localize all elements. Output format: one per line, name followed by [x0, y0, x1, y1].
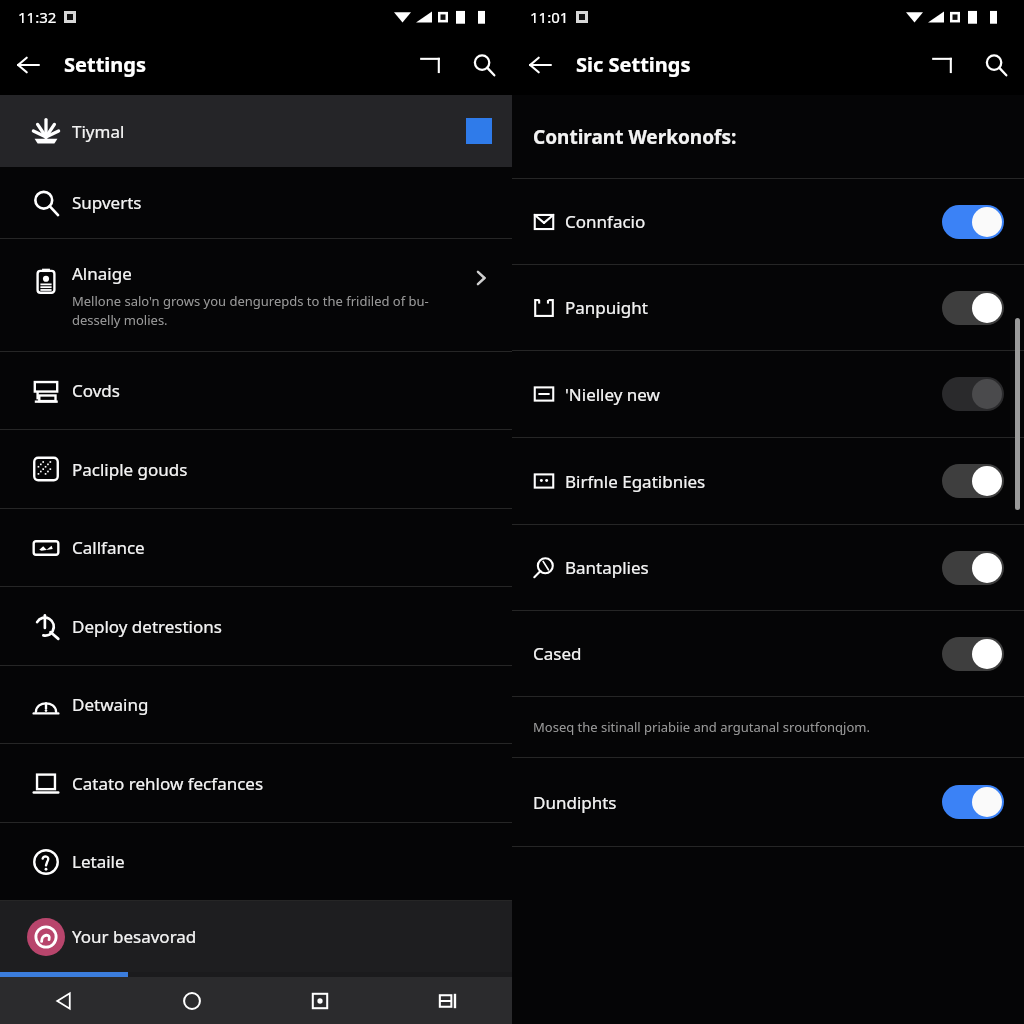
button[interactable]: Back [0, 977, 128, 1024]
staticText: Sic Settings [576, 51, 691, 78]
button[interactable]: Letaile [0, 823, 512, 900]
button[interactable]: Tiymal [0, 95, 512, 167]
button[interactable]: Bantaplies [512, 525, 1024, 610]
button[interactable]: Toggle [942, 551, 1004, 585]
staticText: Dundiphts [533, 791, 942, 814]
button[interactable]: Toggle [942, 291, 1004, 325]
button[interactable]: Connfacio [512, 179, 1024, 264]
button[interactable]: Covds [0, 352, 512, 429]
button[interactable]: Back [0, 37, 56, 93]
button[interactable]: Alnaige [0, 239, 512, 351]
staticText: Panpuight [565, 296, 942, 319]
staticText: Catato rehlow fecfances [72, 772, 264, 795]
staticText: Your besavorad [72, 925, 197, 948]
button[interactable]: Toggle [942, 637, 1004, 671]
button[interactable]: Toggle [942, 205, 1004, 239]
button[interactable]: Catato rehlow fecfances [0, 744, 512, 822]
staticText: Bantaplies [565, 556, 942, 579]
staticText: Birfnle Egatibnies [565, 470, 942, 493]
button[interactable]: Cased [512, 611, 1024, 696]
button[interactable]: Search [456, 37, 512, 93]
button[interactable]: Deploy detrestions [0, 587, 512, 665]
staticText: Deploy detrestions [72, 615, 222, 638]
button[interactable]: 'Nielley new [512, 351, 1024, 437]
staticText: Moseq the sitinall priabiie and argutana… [533, 718, 870, 736]
staticText: Pacliple gouds [72, 458, 188, 481]
staticText: Callfance [72, 536, 145, 559]
button[interactable]: Search [968, 37, 1024, 93]
button[interactable]: Cast [916, 39, 968, 91]
button[interactable]: Toggle [942, 464, 1004, 498]
button[interactable]: Back [512, 37, 568, 93]
staticText: Alnaige [72, 262, 132, 285]
staticText: 11:32 [18, 7, 57, 27]
button[interactable]: Toggle [942, 377, 1004, 411]
staticText: Mellone salo'n grows you dengurepds to t… [72, 292, 462, 329]
button[interactable]: Recents [384, 977, 512, 1024]
staticText: 'Nielley new [565, 383, 942, 406]
button[interactable]: Detwaing [0, 666, 512, 743]
button[interactable]: Toggle [942, 785, 1004, 819]
staticText: Covds [72, 379, 120, 402]
staticText: Cased [533, 642, 942, 665]
button[interactable]: Your besavorad [0, 901, 512, 972]
staticText: Detwaing [72, 693, 149, 716]
staticText: Connfacio [565, 210, 942, 233]
button[interactable]: Pacliple gouds [0, 430, 512, 508]
button[interactable]: Callfance [0, 509, 512, 586]
staticText: Tiymal [72, 120, 125, 143]
staticText: Contirant Werkonofs: [533, 124, 737, 150]
staticText: Supverts [72, 191, 142, 214]
button[interactable]: Dundiphts [512, 758, 1024, 846]
button[interactable]: Panpuight [512, 265, 1024, 350]
button[interactable]: Square [256, 977, 384, 1024]
staticText: 11:01 [530, 7, 569, 27]
button[interactable]: Cast [404, 39, 456, 91]
staticText: Settings [64, 51, 146, 78]
button[interactable]: Birfnle Egatibnies [512, 438, 1024, 524]
button[interactable]: Home [128, 977, 256, 1024]
staticText: Letaile [72, 850, 125, 873]
button[interactable]: Supverts [0, 167, 512, 238]
